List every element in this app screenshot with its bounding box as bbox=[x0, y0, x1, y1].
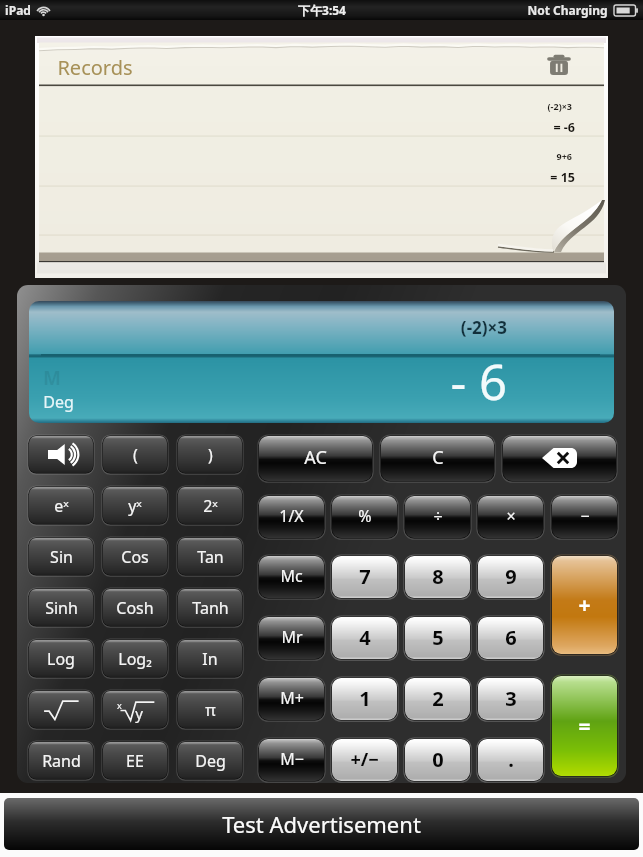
staticText: 4 bbox=[359, 624, 371, 651]
button[interactable]: 1/X bbox=[259, 496, 324, 538]
button[interactable]: 9 bbox=[478, 556, 543, 598]
button[interactable]: 2ˣ bbox=[178, 487, 242, 524]
button[interactable]: 5 bbox=[405, 617, 470, 659]
button[interactable]: In bbox=[178, 640, 242, 677]
staticText: Deg bbox=[195, 750, 226, 772]
staticText: 1/X bbox=[279, 505, 304, 527]
button[interactable]: yˣ bbox=[103, 487, 167, 524]
staticText: Deg bbox=[43, 391, 74, 413]
staticText: 8 bbox=[432, 563, 444, 590]
staticText: In bbox=[202, 648, 218, 670]
staticText: C bbox=[432, 445, 444, 470]
staticText: eˣ bbox=[54, 495, 69, 517]
button[interactable] bbox=[29, 691, 93, 728]
staticText: Test Advertisement bbox=[222, 809, 421, 839]
button[interactable]: − bbox=[552, 496, 617, 538]
staticText: 7 bbox=[359, 563, 371, 590]
button[interactable]: ( bbox=[103, 436, 167, 473]
staticText: Not Charging bbox=[527, 2, 608, 18]
button[interactable]: + bbox=[552, 556, 617, 654]
button[interactable]: Log₂ bbox=[103, 640, 167, 677]
staticText: M− bbox=[280, 748, 304, 770]
staticText: Cosh bbox=[116, 597, 154, 619]
staticText: Log₂ bbox=[118, 648, 152, 670]
button[interactable]: Tanh bbox=[178, 589, 242, 626]
staticText: 2 bbox=[432, 685, 444, 712]
button[interactable]: 2 bbox=[405, 678, 470, 720]
staticText: . bbox=[508, 746, 514, 773]
staticText: × bbox=[506, 505, 516, 527]
staticText: 1 bbox=[359, 685, 371, 712]
button[interactable]: % bbox=[332, 496, 397, 538]
staticText: Tanh bbox=[192, 597, 229, 619]
button[interactable]: C bbox=[381, 436, 494, 481]
button[interactable]: 0 bbox=[405, 739, 470, 781]
button[interactable]: ÷ bbox=[405, 496, 470, 538]
button[interactable]: Deg bbox=[178, 742, 242, 779]
staticText: (-2)×3 bbox=[429, 316, 507, 339]
button[interactable]: π bbox=[178, 691, 242, 728]
button[interactable]: Sinh bbox=[29, 589, 93, 626]
staticText: 0 bbox=[432, 746, 444, 773]
staticText: EE bbox=[126, 750, 144, 772]
button[interactable]: Test Advertisement bbox=[4, 798, 639, 850]
staticText: Mr bbox=[281, 626, 303, 648]
button[interactable]: +/− bbox=[332, 739, 397, 781]
button[interactable]: Delete records bbox=[543, 49, 575, 81]
staticText: iPad bbox=[5, 2, 31, 18]
staticText: 5 bbox=[432, 624, 444, 651]
staticText: 下午3:54 bbox=[298, 2, 346, 18]
staticText: = 15 bbox=[442, 169, 575, 186]
button[interactable]: × bbox=[478, 496, 543, 538]
button[interactable]: Cosh bbox=[103, 589, 167, 626]
staticText: 3 bbox=[505, 685, 517, 712]
staticText: M+ bbox=[280, 687, 304, 709]
button[interactable]: Rand bbox=[29, 742, 93, 779]
button[interactable]: 4 bbox=[332, 617, 397, 659]
staticText: 2ˣ bbox=[203, 495, 218, 517]
button[interactable]: ) bbox=[178, 436, 242, 473]
button[interactable]: Backspace bbox=[503, 436, 616, 481]
button[interactable]: Tan bbox=[178, 538, 242, 575]
staticText: − bbox=[580, 505, 590, 527]
button[interactable]: M+ bbox=[259, 678, 324, 720]
button[interactable]: Log bbox=[29, 640, 93, 677]
staticText: Rand bbox=[42, 750, 81, 772]
button[interactable]: eˣ bbox=[29, 487, 93, 524]
staticText: Mc bbox=[280, 565, 303, 587]
staticText: AC bbox=[304, 445, 327, 470]
button[interactable]: Sin bbox=[29, 538, 93, 575]
staticText: M bbox=[43, 365, 61, 391]
staticText: Sinh bbox=[45, 597, 78, 619]
staticText: = bbox=[578, 712, 591, 741]
staticText: Records bbox=[57, 54, 133, 81]
button[interactable]: Mr bbox=[259, 617, 324, 659]
button[interactable]: EE bbox=[103, 742, 167, 779]
staticText: + bbox=[578, 591, 591, 620]
button[interactable]: 8 bbox=[405, 556, 470, 598]
staticText: 9 bbox=[505, 563, 517, 590]
button[interactable]: 3 bbox=[478, 678, 543, 720]
button[interactable]: (-2)×3 bbox=[29, 301, 614, 423]
staticText: Log bbox=[47, 648, 75, 670]
staticText: x bbox=[117, 699, 122, 711]
staticText: +/− bbox=[350, 747, 379, 772]
button[interactable]: Cos bbox=[103, 538, 167, 575]
staticText: - 6 bbox=[407, 348, 507, 415]
staticText: % bbox=[358, 505, 372, 527]
staticText: ) bbox=[208, 444, 213, 466]
button[interactable]: Sound bbox=[29, 436, 93, 473]
staticText: Tan bbox=[197, 546, 224, 568]
button[interactable]: = bbox=[552, 676, 617, 776]
button[interactable]: AC bbox=[259, 436, 372, 481]
button[interactable]: 7 bbox=[332, 556, 397, 598]
button[interactable]: Mc bbox=[259, 556, 324, 598]
button[interactable]: 6 bbox=[478, 617, 543, 659]
staticText: π bbox=[205, 699, 216, 721]
staticText: ( bbox=[133, 444, 138, 466]
button[interactable]: 1 bbox=[332, 678, 397, 720]
button[interactable]: . bbox=[478, 739, 543, 781]
staticText: ÷ bbox=[433, 505, 443, 527]
button[interactable]: x bbox=[103, 691, 167, 728]
button[interactable]: M− bbox=[259, 739, 324, 781]
